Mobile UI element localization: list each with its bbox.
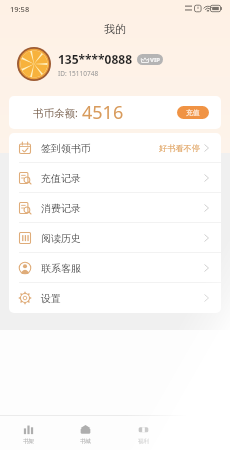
staticText: VIP [150, 56, 160, 64]
staticText: 设置 [41, 292, 61, 305]
staticText: 充值 [186, 108, 200, 117]
button[interactable]: 书架 [0, 416, 57, 445]
staticText: 阅读历史 [41, 232, 81, 245]
button[interactable]: 阅读历史 [9, 223, 221, 253]
button[interactable]: 联系客服 [9, 253, 221, 283]
button[interactable]: 签到领书币 [9, 133, 221, 163]
staticText: 联系客服 [41, 262, 81, 275]
staticText: 19:58 [10, 4, 30, 14]
staticText: 135****0888 [58, 51, 133, 67]
staticText: 书城 [80, 438, 91, 445]
staticText: 好书看不停 [159, 143, 200, 153]
staticText: 充值记录 [41, 172, 81, 185]
staticText: 书架 [23, 438, 34, 445]
button[interactable]: 福利 [114, 416, 172, 445]
staticText: ID: 15110748 [58, 69, 99, 78]
staticText: 我的 [104, 22, 126, 36]
button[interactable]: 书城 [57, 416, 114, 445]
staticText: 签到领书币 [41, 142, 91, 155]
button[interactable]: 设置 [9, 283, 221, 313]
staticText: 消费记录 [41, 202, 81, 215]
button[interactable]: 消费记录 [9, 193, 221, 223]
staticText: 福利 [138, 438, 149, 445]
button[interactable]: 充值记录 [9, 163, 221, 193]
button[interactable]: 充值 [177, 106, 209, 119]
button[interactable]: 书币余额: [9, 96, 221, 129]
staticText: 4516 [82, 100, 124, 125]
staticText: 书币余额: [33, 106, 78, 120]
